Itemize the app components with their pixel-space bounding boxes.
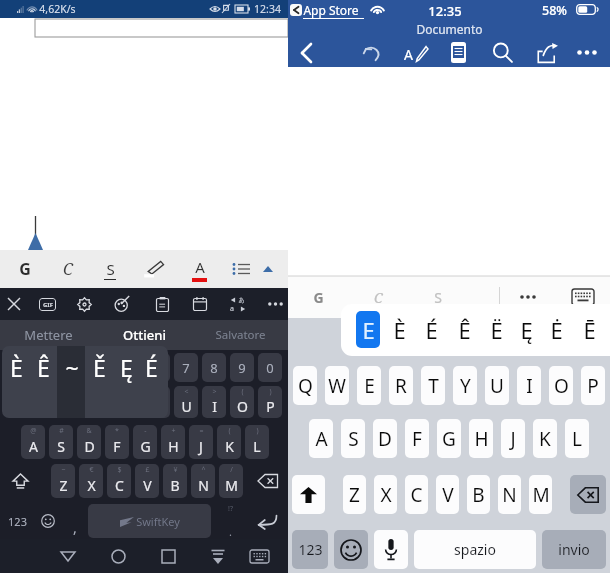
- button[interactable]: Z: [343, 475, 366, 514]
- button[interactable]: 8: [202, 353, 226, 382]
- button[interactable]: Change keyboard: [243, 539, 275, 573]
- button[interactable]: =: [189, 425, 213, 459]
- button[interactable]: O: [549, 366, 573, 405]
- button[interactable]: invio: [542, 530, 606, 569]
- button[interactable]: !?: [214, 504, 246, 538]
- button[interactable]: H: [469, 419, 493, 458]
- button[interactable]: Bullet list: [222, 250, 260, 288]
- button[interactable]: Emoji: [34, 504, 62, 538]
- button[interactable]: 1: [6, 353, 30, 382]
- button[interactable]: ~: [51, 464, 75, 498]
- button[interactable]: SwiftKey: [88, 504, 211, 538]
- button[interactable]: 2: [34, 353, 58, 382]
- button[interactable]: Shift: [5, 464, 35, 498]
- button[interactable]: (: [230, 386, 254, 418]
- button[interactable]: C: [348, 276, 408, 318]
- button[interactable]: ): [258, 386, 282, 418]
- button[interactable]: |: [62, 386, 86, 418]
- button[interactable]: Q: [293, 366, 317, 405]
- button[interactable]: C: [405, 475, 428, 514]
- button[interactable]: Home: [102, 539, 134, 573]
- button[interactable]: App Store: [303, 2, 364, 19]
- button[interactable]: G: [6, 250, 44, 288]
- button[interactable]: I: [517, 366, 541, 405]
- button[interactable]: 123: [292, 530, 328, 569]
- button[interactable]: Close: [0, 288, 28, 320]
- button[interactable]: Ė: [542, 304, 570, 356]
- button[interactable]: €: [79, 464, 103, 498]
- button[interactable]: G: [288, 276, 348, 318]
- button[interactable]: *: [105, 425, 129, 459]
- button[interactable]: 5: [118, 353, 142, 382]
- button[interactable]: Shift: [292, 475, 325, 514]
- button[interactable]: M: [529, 475, 552, 514]
- button[interactable]: Translate: [224, 288, 252, 320]
- button[interactable]: @: [21, 425, 45, 459]
- button[interactable]: #: [49, 425, 73, 459]
- button[interactable]: £: [135, 464, 159, 498]
- button[interactable]: ,: [62, 504, 88, 538]
- button[interactable]: Backspace: [252, 464, 284, 498]
- button[interactable]: Enter: [248, 504, 286, 538]
- button[interactable]: spazio: [414, 530, 536, 569]
- button[interactable]: X: [374, 475, 397, 514]
- button[interactable]: G: [437, 419, 461, 458]
- button[interactable]: Undo: [355, 38, 390, 67]
- button[interactable]: /: [219, 464, 243, 498]
- button[interactable]: Clipboard: [148, 288, 176, 320]
- button[interactable]: S: [408, 276, 468, 318]
- button[interactable]: [85, 346, 168, 418]
- button[interactable]: $: [107, 464, 131, 498]
- button[interactable]: -: [133, 425, 157, 459]
- button[interactable]: A: [309, 419, 333, 458]
- button[interactable]: K: [533, 419, 557, 458]
- button[interactable]: Hide keyboard: [202, 539, 234, 573]
- button[interactable]: <: [174, 386, 198, 418]
- button[interactable]: Mettere: [0, 320, 96, 350]
- button[interactable]: Salvatore: [192, 320, 288, 350]
- button[interactable]: More: [500, 276, 556, 318]
- button[interactable]: 9: [230, 353, 254, 382]
- button[interactable]: 123: [2, 504, 32, 538]
- button[interactable]: Ę: [512, 304, 540, 356]
- button[interactable]: Y: [453, 366, 477, 405]
- button[interactable]: E: [356, 311, 380, 348]
- button[interactable]: Recents: [152, 539, 184, 573]
- button[interactable]: [57, 346, 85, 418]
- button[interactable]: Ē: [575, 304, 603, 356]
- button[interactable]: ¥: [163, 464, 187, 498]
- button[interactable]: T: [421, 366, 445, 405]
- button[interactable]: Hide keyboard: [556, 276, 610, 318]
- button[interactable]: Ê: [450, 304, 478, 356]
- button[interactable]: Ë: [482, 304, 510, 356]
- button[interactable]: N: [498, 475, 521, 514]
- button[interactable]: ^: [191, 464, 215, 498]
- button[interactable]: È: [385, 304, 413, 356]
- button[interactable]: S: [91, 250, 129, 288]
- button[interactable]: Highlight: [134, 250, 172, 288]
- button[interactable]: S: [341, 419, 365, 458]
- button[interactable]: Ottieni: [96, 320, 192, 350]
- button[interactable]: R: [389, 366, 413, 405]
- button[interactable]: Mobile view: [441, 38, 476, 67]
- button[interactable]: Share: [530, 38, 565, 67]
- button[interactable]: Edit: [398, 38, 433, 67]
- button[interactable]: C: [49, 250, 87, 288]
- button[interactable]: Back: [52, 539, 84, 573]
- button[interactable]: More: [261, 288, 289, 320]
- button[interactable]: L: [565, 419, 589, 458]
- button[interactable]: Backspace: [570, 475, 606, 514]
- button[interactable]: Back: [289, 38, 324, 67]
- button[interactable]: Font color: [180, 250, 218, 288]
- button[interactable]: V: [436, 475, 459, 514]
- button[interactable]: Emoji: [334, 530, 368, 569]
- button[interactable]: 3: [62, 353, 86, 382]
- button[interactable]: (: [217, 425, 241, 459]
- button[interactable]: W: [325, 366, 349, 405]
- button[interactable]: É: [417, 304, 445, 356]
- button[interactable]: Calendar: [186, 288, 214, 320]
- button[interactable]: P: [581, 366, 605, 405]
